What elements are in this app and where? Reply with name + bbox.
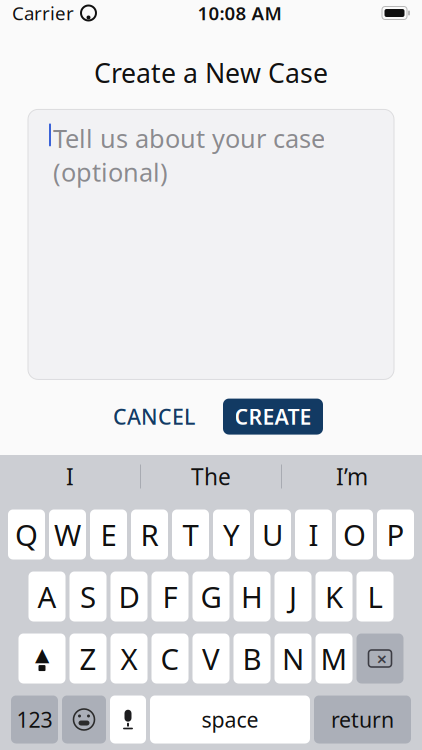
button[interactable]: I <box>0 453 140 499</box>
button[interactable]: O <box>336 509 373 559</box>
button[interactable]: P <box>377 509 414 559</box>
staticText: K <box>325 577 343 616</box>
staticText: V <box>202 639 220 678</box>
button[interactable]: Emoji <box>62 695 106 743</box>
button[interactable]: W <box>49 509 86 559</box>
button[interactable]: Z <box>69 633 106 683</box>
button[interactable]: CREATE <box>223 399 323 435</box>
staticText: F <box>162 577 177 616</box>
staticText: S <box>80 577 96 616</box>
staticText: 123 <box>16 705 52 734</box>
button[interactable]: Q <box>8 509 45 559</box>
staticText: R <box>140 515 158 554</box>
button[interactable]: N <box>274 633 311 683</box>
button[interactable]: Delete <box>356 633 403 683</box>
staticText: D <box>118 577 139 616</box>
staticText: H <box>241 577 263 616</box>
button[interactable]: I’m <box>282 453 422 499</box>
button[interactable]: return <box>314 695 411 743</box>
button[interactable]: Dictation <box>110 695 146 743</box>
button[interactable]: space <box>150 695 310 743</box>
staticText: X <box>120 639 137 678</box>
button[interactable]: M <box>315 633 352 683</box>
button[interactable]: X <box>110 633 147 683</box>
button[interactable]: D <box>110 571 147 621</box>
button[interactable]: C <box>151 633 188 683</box>
button[interactable]: B <box>233 633 270 683</box>
button[interactable]: 123 <box>11 695 58 743</box>
staticText: Q <box>15 515 38 554</box>
staticText: Carrier <box>12 1 74 25</box>
staticText: CANCEL <box>113 402 195 431</box>
staticText: N <box>282 639 304 678</box>
staticText: G <box>200 577 221 616</box>
staticText: return <box>331 705 394 734</box>
staticText: ▲ <box>35 644 49 665</box>
staticText: × <box>376 646 387 671</box>
staticText: 10:08 AM <box>197 1 281 25</box>
button[interactable]: G <box>192 571 229 621</box>
button[interactable]: F <box>151 571 188 621</box>
button[interactable]: H <box>233 571 270 621</box>
staticText: Z <box>79 639 96 678</box>
button[interactable]: Shift <box>18 633 65 683</box>
button[interactable]: E <box>90 509 127 559</box>
button[interactable]: R <box>131 509 168 559</box>
button[interactable]: V <box>192 633 229 683</box>
button[interactable]: T <box>172 509 209 559</box>
button[interactable]: K <box>315 571 352 621</box>
button[interactable]: S <box>69 571 106 621</box>
button[interactable]: A <box>28 571 65 621</box>
staticText: Tell us about your case (optional) <box>53 121 325 189</box>
button[interactable]: CANCEL <box>99 392 209 441</box>
button[interactable]: The <box>141 453 281 499</box>
staticText: Y <box>223 515 240 554</box>
staticText: A <box>37 577 56 616</box>
staticText: I <box>308 515 318 554</box>
staticText: C <box>160 639 179 678</box>
staticText: The <box>191 461 231 491</box>
staticText: I’m <box>336 461 368 491</box>
staticText: T <box>182 515 198 554</box>
button[interactable]: U <box>254 509 291 559</box>
staticText: O <box>343 515 366 554</box>
button[interactable]: J <box>274 571 311 621</box>
staticText: M <box>320 639 347 678</box>
button[interactable]: I <box>295 509 332 559</box>
staticText: P <box>386 515 404 554</box>
staticText: L <box>367 577 382 616</box>
staticText: B <box>242 639 261 678</box>
staticText: CREATE <box>234 402 311 431</box>
staticText: I <box>66 461 74 491</box>
staticText: space <box>201 705 258 734</box>
staticText: Create a New Case <box>94 55 328 90</box>
staticText: W <box>54 515 81 554</box>
button[interactable]: Y <box>213 509 250 559</box>
button[interactable]: L <box>356 571 393 621</box>
staticText: E <box>100 515 116 554</box>
staticText: J <box>289 577 297 616</box>
staticText: U <box>262 515 283 554</box>
